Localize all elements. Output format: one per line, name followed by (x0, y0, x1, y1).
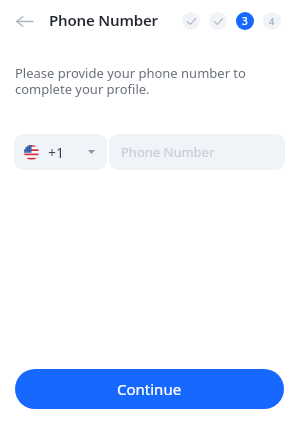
button[interactable]: Back (8, 5, 40, 37)
button[interactable]: Continue (15, 369, 284, 409)
button[interactable]: Phone number input (109, 134, 285, 170)
button[interactable]: Completed step (209, 12, 227, 30)
staticText: Continue (117, 379, 182, 399)
staticText: 4 (269, 15, 275, 28)
staticText: 3 (242, 14, 248, 28)
button[interactable]: Step 4 (263, 12, 281, 30)
button[interactable]: Step 3 (236, 12, 254, 30)
button[interactable]: Completed step (182, 12, 200, 30)
staticText: Phone Number (49, 10, 158, 31)
staticText: Please provide your phone number to comp… (15, 66, 265, 98)
staticText: +1 (48, 143, 65, 162)
staticText: Phone Number (121, 143, 215, 161)
button[interactable]: Select country code (14, 134, 107, 170)
